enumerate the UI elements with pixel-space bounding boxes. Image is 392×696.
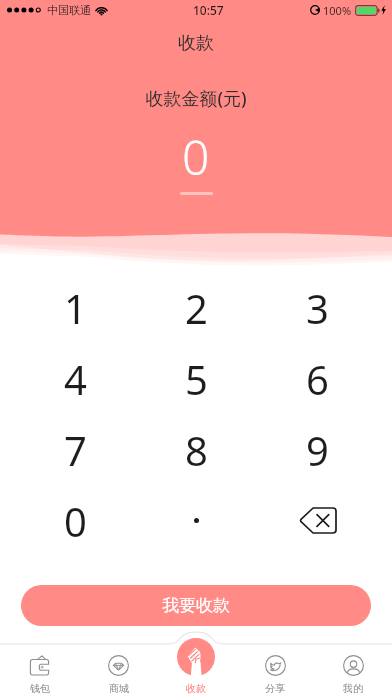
staticText: 我要收款 xyxy=(162,595,230,616)
button[interactable] xyxy=(136,485,257,556)
button[interactable]: 9 xyxy=(257,414,378,485)
staticText: 1 xyxy=(64,281,87,335)
button[interactable]: Wallet xyxy=(0,630,79,696)
other: Profile xyxy=(343,655,364,676)
button[interactable]: Delete xyxy=(257,485,378,556)
staticText: 收款金额(元) xyxy=(0,86,392,111)
staticText: 10:57 xyxy=(193,2,224,18)
staticText: 商城 xyxy=(109,682,129,695)
staticText: 6 xyxy=(306,352,329,406)
button[interactable]: 2 xyxy=(136,272,257,343)
staticText: 9 xyxy=(306,423,329,477)
staticText: 3 xyxy=(306,281,329,335)
button[interactable]: 7 xyxy=(14,414,136,485)
staticText: 分享 xyxy=(265,682,285,695)
staticText: 4 xyxy=(64,352,87,406)
staticText: 收款 xyxy=(0,32,392,55)
button[interactable]: Profile xyxy=(314,630,392,696)
button[interactable]: 我要收款 xyxy=(21,585,371,626)
button[interactable]: 6 xyxy=(257,343,378,414)
button[interactable]: Store xyxy=(79,630,158,696)
staticText: 5 xyxy=(185,352,208,406)
button[interactable]: 1 xyxy=(14,272,136,343)
other: Store xyxy=(108,655,129,676)
button[interactable]: 8 xyxy=(136,414,257,485)
button[interactable]: 3 xyxy=(257,272,378,343)
staticText: 2 xyxy=(185,281,208,335)
staticText: 0 xyxy=(182,124,210,189)
button[interactable]: 收款 xyxy=(157,630,235,696)
button[interactable]: 0 xyxy=(14,485,136,556)
other: Delete xyxy=(300,508,336,533)
staticText: 0 xyxy=(64,494,87,548)
staticText: 中国联通 xyxy=(47,3,91,17)
staticText: 钱包 xyxy=(30,682,50,695)
other: Share xyxy=(265,655,286,676)
staticText: 收款 xyxy=(186,682,206,695)
staticText: 100% xyxy=(323,3,352,18)
staticText: 7 xyxy=(64,423,87,477)
other: Wallet xyxy=(29,655,50,676)
staticText: 8 xyxy=(185,423,208,477)
staticText: 我的 xyxy=(343,682,363,695)
button[interactable]: Share xyxy=(236,630,314,696)
button[interactable]: 4 xyxy=(14,343,136,414)
button[interactable]: 5 xyxy=(136,343,257,414)
